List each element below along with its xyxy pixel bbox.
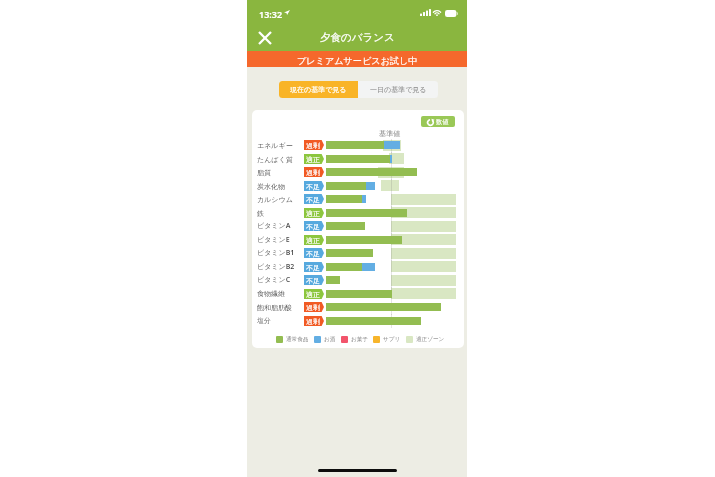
staticText: 飽和脂肪酸	[257, 303, 292, 312]
staticText: 適正	[306, 209, 320, 218]
staticText: 適正	[306, 290, 320, 299]
staticText: 不足	[306, 263, 320, 272]
button[interactable]	[254, 300, 460, 313]
staticText: ビタミンC	[257, 275, 291, 285]
button[interactable]	[254, 260, 460, 273]
staticText: 塩分	[257, 316, 271, 325]
staticText: たんぱく質	[257, 155, 293, 164]
staticText: ビタミンE	[257, 235, 290, 245]
staticText: 基準値	[379, 129, 401, 138]
button[interactable]	[254, 152, 460, 165]
button[interactable]	[254, 179, 460, 192]
button[interactable]	[254, 219, 460, 232]
staticText: 現在の基準で見る	[290, 85, 347, 94]
staticText: サプリ	[383, 336, 401, 343]
button[interactable]	[254, 287, 460, 300]
staticText: 夕食のバランス	[320, 31, 395, 44]
button[interactable]: プレミアムサービスお試し中	[247, 51, 467, 67]
staticText: 不足	[306, 222, 320, 231]
button[interactable]	[254, 233, 460, 246]
button[interactable]	[254, 273, 460, 286]
staticText: 不足	[306, 249, 320, 258]
staticText: 不足	[306, 276, 320, 285]
staticText: ビタミンA	[257, 221, 291, 231]
button[interactable]: 一日の基準で見る	[358, 81, 438, 98]
staticText: 適正	[306, 155, 320, 164]
staticText: 過剰	[306, 141, 320, 150]
staticText: プレミアムサービスお試し中	[297, 55, 418, 66]
button[interactable]: 現在の基準で見る	[279, 81, 358, 98]
staticText: 不足	[306, 182, 320, 191]
staticText: 適正	[306, 236, 320, 245]
staticText: 鉄	[257, 209, 264, 218]
button[interactable]	[254, 246, 460, 259]
staticText: 通常食品	[286, 336, 309, 343]
button[interactable]: 数値	[421, 116, 455, 127]
staticText: エネルギー	[257, 141, 293, 150]
button[interactable]: Close	[254, 27, 276, 49]
button[interactable]	[254, 314, 460, 327]
staticText: カルシウム	[257, 195, 293, 204]
button[interactable]	[254, 138, 460, 151]
staticText: 炭水化物	[257, 182, 285, 191]
staticText: 不足	[306, 195, 320, 204]
staticText: 適正ゾーン	[416, 336, 445, 343]
button[interactable]	[254, 206, 460, 219]
staticText: 13:32	[259, 8, 283, 20]
staticText: 一日の基準で見る	[370, 85, 427, 94]
staticText: 過剰	[306, 303, 320, 312]
staticText: 過剰	[306, 168, 320, 177]
staticText: お酒	[324, 336, 336, 343]
staticText: 脂質	[257, 168, 271, 177]
staticText: お菓子	[351, 336, 368, 343]
staticText: 食物繊維	[257, 289, 285, 298]
button[interactable]	[254, 165, 460, 178]
staticText: ビタミンB1	[257, 248, 295, 258]
staticText: 過剰	[306, 317, 320, 326]
staticText: ビタミンB2	[257, 262, 295, 272]
staticText: 数値	[436, 118, 449, 126]
button[interactable]	[254, 192, 460, 205]
